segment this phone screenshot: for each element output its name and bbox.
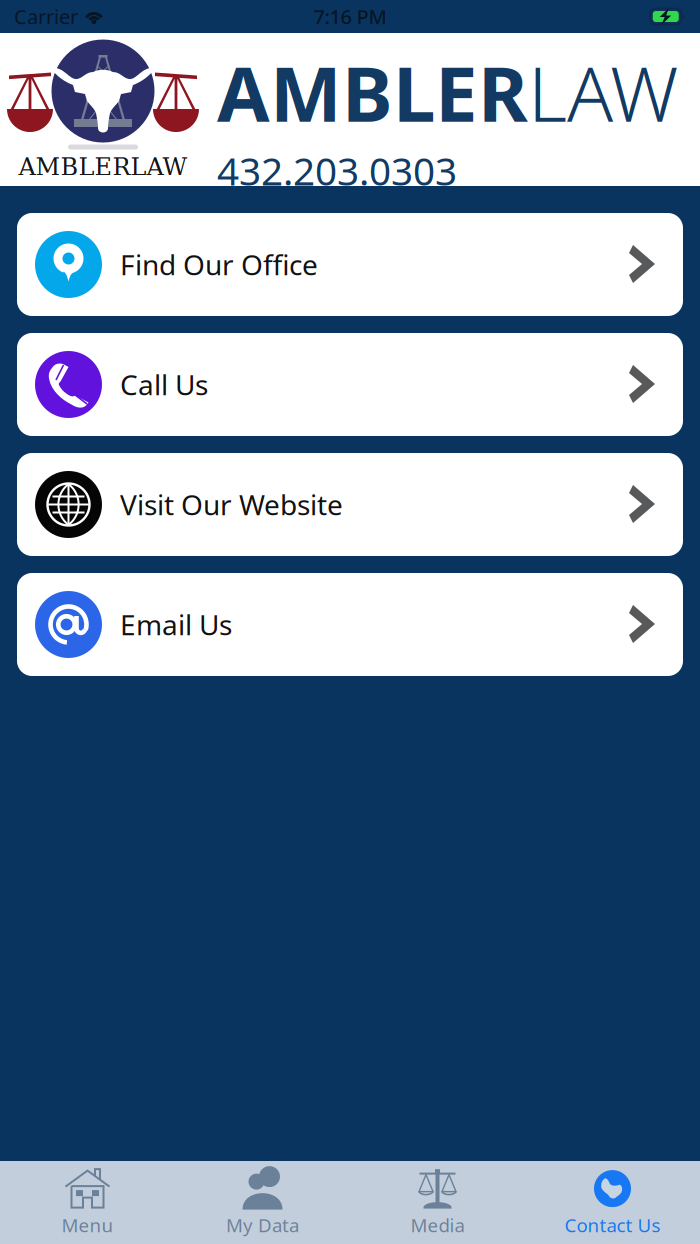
button[interactable]: My Data [175,1161,350,1244]
staticText: Menu [61,1213,113,1237]
staticText: AMBLER [217,42,528,143]
staticText: Contact Us [564,1213,660,1237]
button[interactable]: Media [350,1161,525,1244]
staticText: 432.203.0303 [217,145,457,196]
button[interactable]: Email Us [17,573,683,676]
staticText: AMBLERLAW [18,153,187,181]
button[interactable]: Find Our Office [17,213,683,316]
button[interactable]: Call Us [17,333,683,436]
button[interactable]: Visit Our Website [17,453,683,556]
staticText: LAW [528,42,678,143]
staticText: Media [410,1213,464,1237]
staticText: Call Us [120,366,208,403]
staticText: Find Our Office [120,246,318,283]
staticText: Carrier [14,3,78,30]
staticText: Email Us [120,606,232,643]
button[interactable]: Contact Us [525,1161,700,1244]
button[interactable]: Menu [0,1161,175,1244]
staticText: 7:16 PM [313,3,386,30]
staticText: Visit Our Website [120,486,343,523]
staticText: My Data [226,1213,299,1237]
